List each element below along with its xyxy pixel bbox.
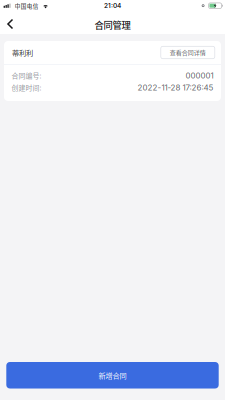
staticText: 蒂利利 [12,47,33,58]
staticText: 21:04 [104,2,121,9]
staticText: 中国电信 [15,2,39,10]
staticText: 新增合同 [98,370,126,380]
staticText: 创建时间: [11,83,41,93]
staticText: 000001 [185,71,213,80]
button[interactable]: 新增合同 [6,362,219,388]
staticText: 合同编号: [11,71,41,81]
staticText: 合同管理 [94,18,130,31]
button[interactable]: 返回 [0,14,20,34]
button[interactable]: 查看合同详情 [161,46,215,59]
staticText: 2022-11-28 17:26:45 [137,83,213,92]
staticText: 查看合同详情 [170,48,206,57]
